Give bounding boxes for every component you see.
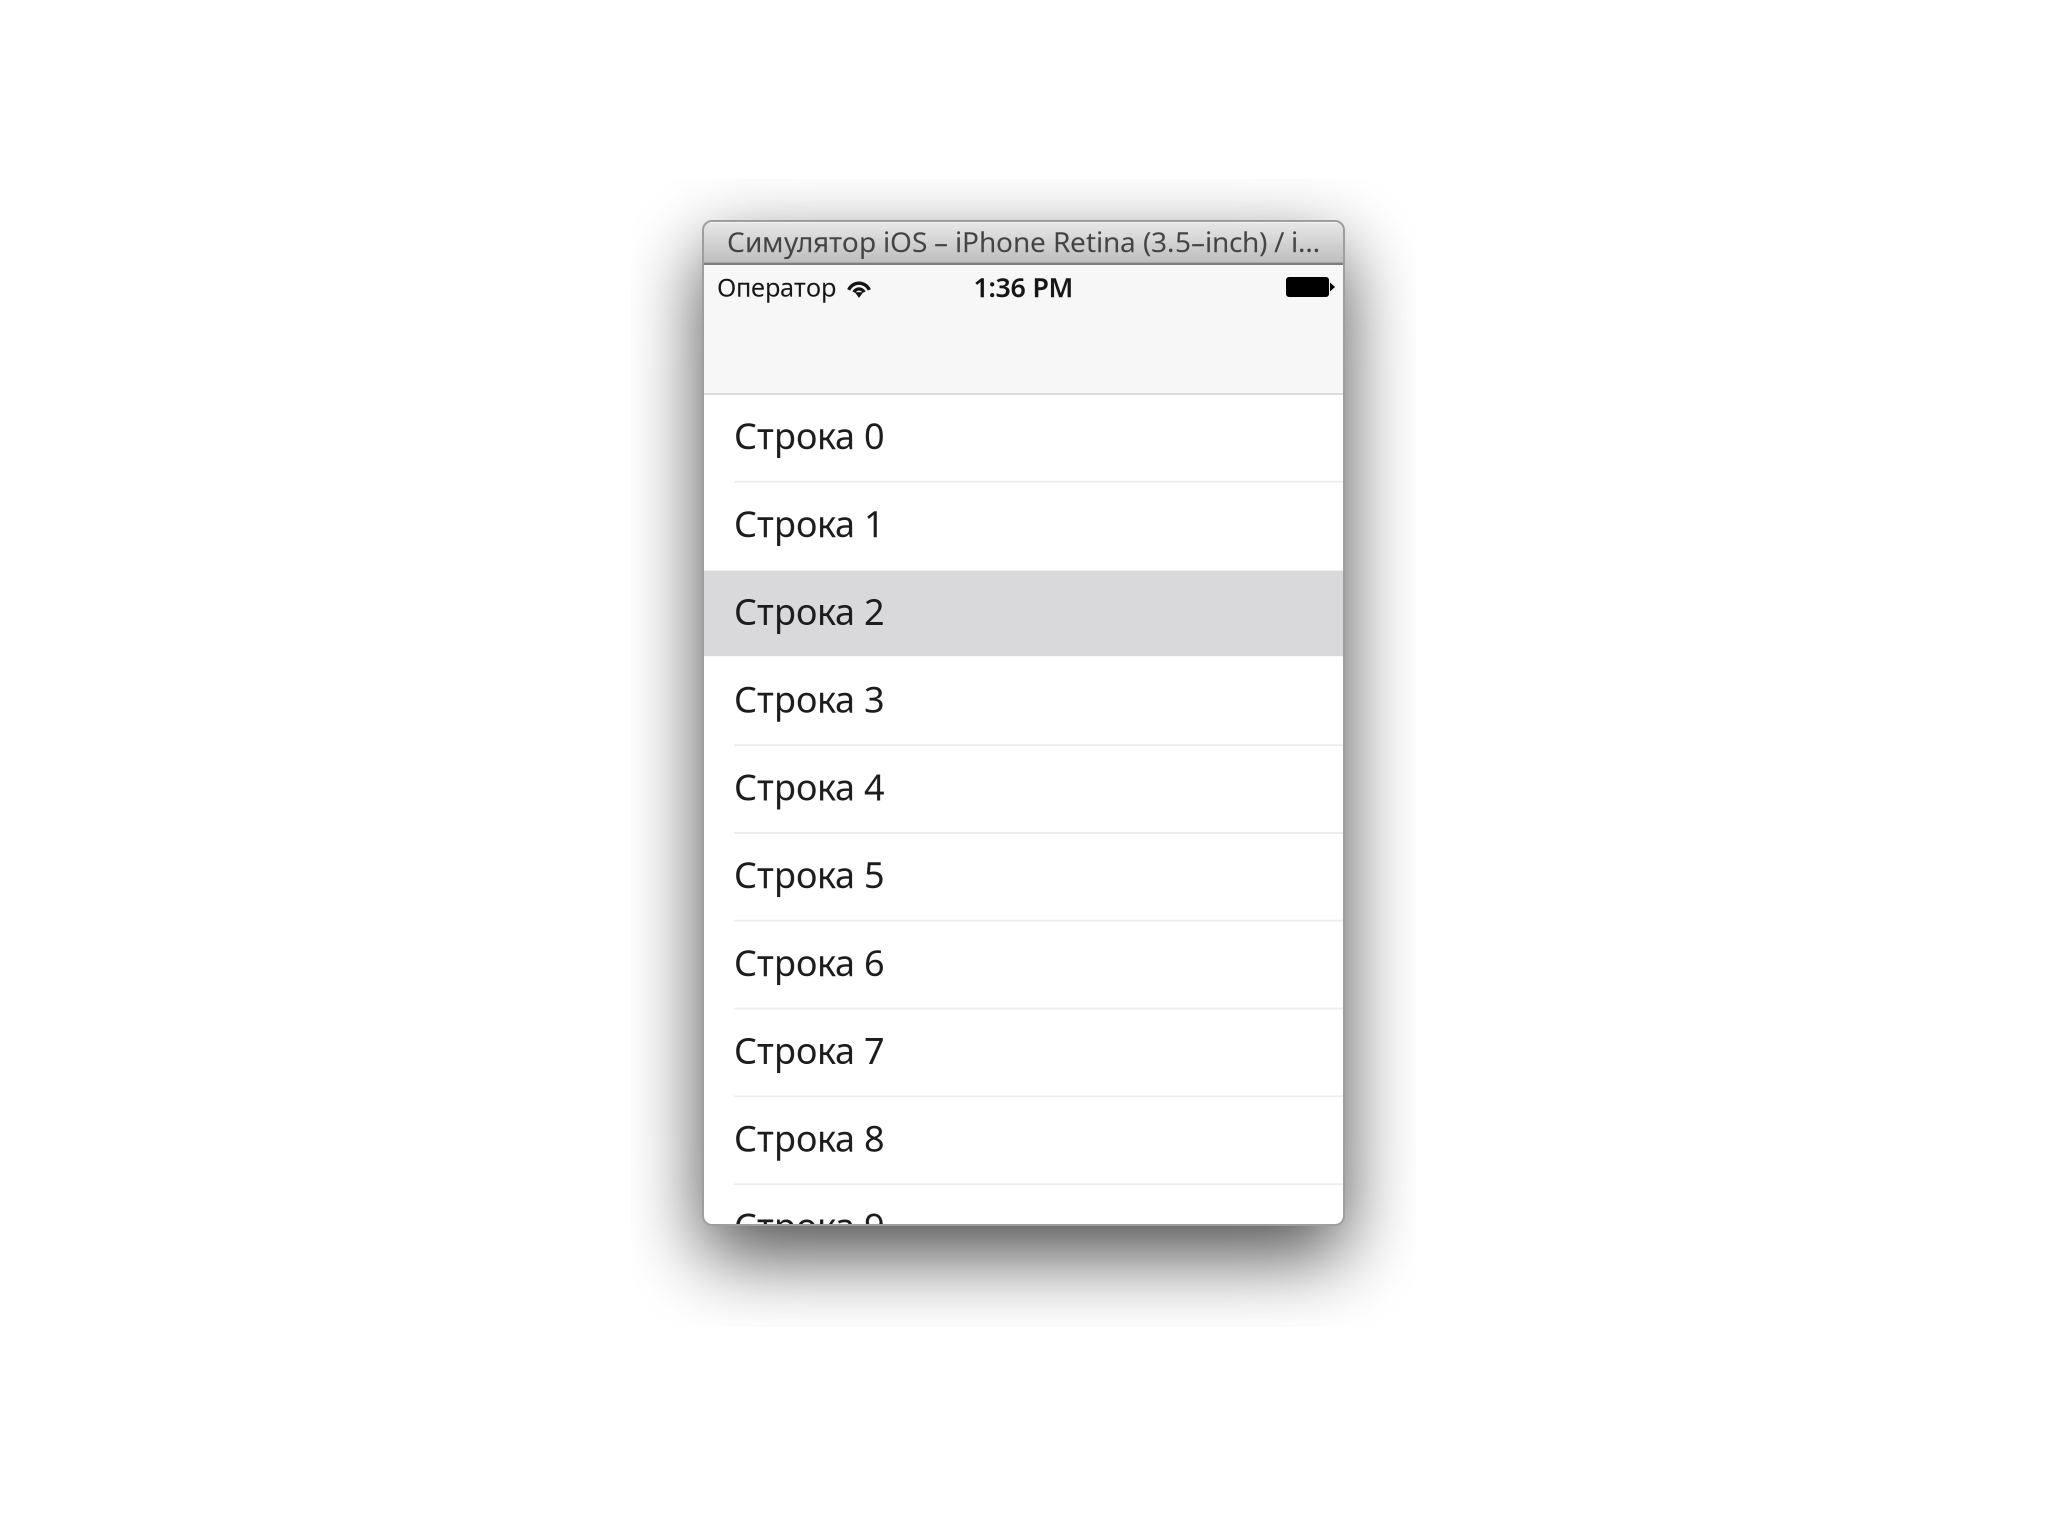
staticText: Строка 8 — [734, 1114, 885, 1162]
button[interactable]: Строка 2 — [703, 571, 1344, 656]
staticText: Строка 7 — [734, 1026, 885, 1074]
button[interactable]: Строка 3 — [703, 658, 1344, 744]
button[interactable]: Строка 8 — [703, 1097, 1344, 1183]
staticText: Строка 1 — [734, 499, 885, 547]
staticText: Строка 6 — [734, 938, 885, 986]
button[interactable]: Строка 5 — [703, 834, 1344, 920]
staticText: Оператор — [717, 270, 836, 304]
staticText: Строка 3 — [734, 675, 885, 723]
staticText: 1:36 PM — [973, 269, 1073, 305]
button[interactable]: Строка 6 — [703, 922, 1344, 1008]
staticText: Строка 9 — [734, 1202, 885, 1249]
button[interactable]: Строка 7 — [703, 1010, 1344, 1095]
staticText: Строка 4 — [734, 763, 885, 810]
button[interactable]: Строка 9 — [703, 1185, 1344, 1271]
staticText: Строка 5 — [734, 850, 885, 898]
button[interactable]: Строка 0 — [703, 395, 1344, 481]
staticText: Строка 0 — [734, 411, 885, 459]
staticText: Строка 2 — [734, 587, 885, 635]
button[interactable]: Строка 1 — [703, 483, 1344, 569]
button[interactable]: Строка 4 — [703, 746, 1344, 832]
staticText: Симулятор iOS – iPhone Retina (3.5–inch)… — [727, 223, 1320, 260]
